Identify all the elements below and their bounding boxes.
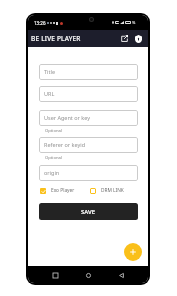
button[interactable]: Referer or keyid [39, 137, 138, 153]
button[interactable]: URL [39, 86, 138, 102]
button[interactable]: Recents [49, 269, 61, 281]
staticText: Optional [45, 128, 62, 134]
staticText: Optional [45, 155, 62, 161]
button[interactable]: Add [124, 243, 142, 261]
button[interactable]: Share [118, 32, 131, 45]
staticText: origin [44, 169, 60, 176]
staticText: % [132, 20, 136, 25]
button[interactable]: SAVE [39, 203, 138, 220]
staticText: URL [44, 90, 55, 97]
button[interactable]: Exo Player [40, 187, 75, 194]
staticText: 13:26 [34, 20, 46, 26]
staticText: User Agent or key [44, 114, 91, 121]
button[interactable]: origin [39, 165, 138, 181]
staticText: BE LIVE PLAYER [31, 34, 81, 43]
button[interactable]: Title [39, 64, 138, 80]
staticText: Exo Player [51, 187, 75, 194]
staticText: Referer or keyid [44, 141, 86, 148]
staticText: DRM LINK [101, 187, 124, 194]
button[interactable]: User Agent or key [39, 110, 138, 126]
staticText: Title [44, 68, 55, 75]
staticText: SAVE [81, 208, 96, 216]
button[interactable]: Back [115, 269, 127, 281]
button[interactable]: Security [132, 32, 145, 45]
button[interactable]: DRM LINK [90, 187, 124, 194]
button[interactable]: Home [82, 269, 94, 281]
